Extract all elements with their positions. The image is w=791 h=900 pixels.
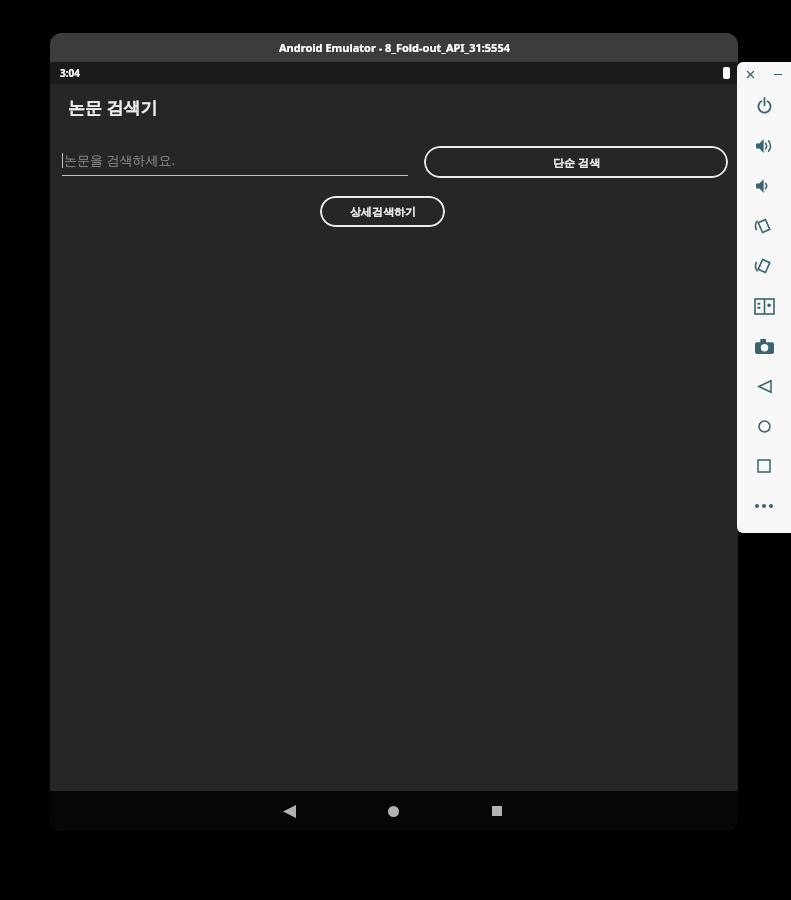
button[interactable]: More options xyxy=(737,486,791,526)
staticText: 상세검색하기 xyxy=(350,205,416,219)
button[interactable]: Close xyxy=(737,62,764,86)
button[interactable]: 논문을 검색하세요. xyxy=(62,149,408,176)
button[interactable]: Recent apps xyxy=(477,791,517,831)
button[interactable]: 상세검색하기 xyxy=(320,196,445,227)
button[interactable]: Rotate left xyxy=(737,206,791,246)
button[interactable]: Volume up xyxy=(737,126,791,166)
button[interactable]: Fold device xyxy=(737,286,791,326)
button[interactable]: Back xyxy=(737,366,791,406)
button[interactable]: Volume down xyxy=(737,166,791,206)
button[interactable]: Take screenshot xyxy=(737,326,791,366)
staticText: 논문 검색기 xyxy=(68,96,158,119)
button[interactable]: 단순 검색 xyxy=(424,146,728,178)
button[interactable]: Minimize xyxy=(764,62,791,86)
staticText: 단순 검색 xyxy=(553,155,600,170)
staticText: 논문을 검색하세요. xyxy=(64,151,175,169)
button[interactable]: Rotate right xyxy=(737,246,791,286)
button[interactable]: Back xyxy=(269,791,309,831)
staticText: Android Emulator - 8_Fold-out_API_31:555… xyxy=(279,40,510,55)
button[interactable]: Overview xyxy=(737,446,791,486)
staticText: 3:04 xyxy=(60,66,80,80)
button[interactable]: Home xyxy=(737,406,791,446)
button[interactable]: Power xyxy=(737,86,791,126)
button[interactable]: Home xyxy=(373,791,413,831)
